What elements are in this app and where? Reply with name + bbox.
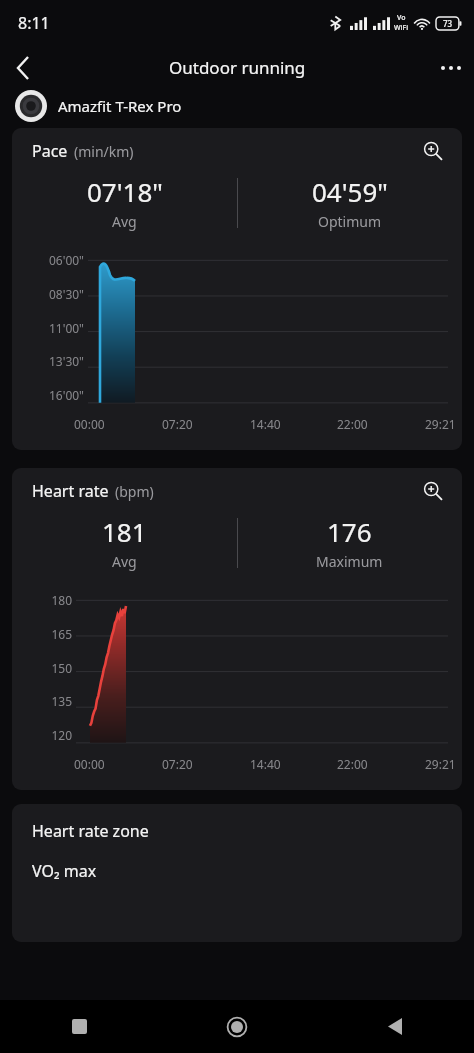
staticText: 07'18" [87,174,163,209]
button[interactable]: Amazfit T-Rex Pro [0,90,474,122]
button[interactable]: Back [0,45,46,90]
button[interactable]: Pace [12,128,462,450]
staticText: VO₂ max [32,860,97,882]
staticText: 150 [51,660,72,676]
staticText: Optimum [318,212,382,231]
staticText: 22:00 [337,756,368,772]
button[interactable]: Home [158,1000,316,1053]
staticText: 8:11 [18,12,50,34]
button[interactable]: Heart rate [12,468,462,790]
staticText: Heart rate [32,480,109,502]
staticText: 13'30" [48,353,84,369]
staticText: 29:21 [425,756,456,772]
staticText: 14:40 [250,756,281,772]
staticText: Maximum [316,552,383,571]
button[interactable]: Zoom in on Heart rate chart [416,474,450,508]
staticText: Avg [112,552,137,571]
staticText: 08'30" [48,286,84,302]
staticText: Outdoor running [169,56,306,79]
staticText: 165 [51,626,72,642]
staticText: Vo [397,13,406,23]
staticText: 00:00 [74,756,105,772]
staticText: 06'00" [48,252,84,268]
staticText: Pace [32,140,68,162]
staticText: 11'00" [48,320,84,336]
staticText: Avg [112,212,137,231]
staticText: Amazfit T-Rex Pro [58,96,182,116]
button[interactable]: Zoom in on Pace chart [416,134,450,168]
staticText: (min/km) [74,142,134,161]
staticText: 73 [443,18,453,29]
button[interactable]: Recent apps [0,1000,158,1053]
staticText: 135 [51,693,72,709]
staticText: 180 [51,592,72,608]
staticText: 07:20 [162,416,193,432]
staticText: 00:00 [74,416,105,432]
staticText: 29:21 [425,416,456,432]
staticText: 04'59" [312,174,388,209]
button[interactable]: Back [316,1000,474,1053]
staticText: 16'00" [48,387,84,403]
staticText: Heart rate zone [32,820,149,842]
button[interactable]: More options [428,45,474,90]
staticText: 181 [102,514,147,549]
staticText: 14:40 [250,416,281,432]
staticText: 120 [51,727,72,743]
button[interactable]: Heart rate zone [12,804,462,942]
staticText: 07:20 [162,756,193,772]
staticText: (bpm) [115,482,154,501]
staticText: WiFi [394,23,409,33]
staticText: 22:00 [337,416,368,432]
staticText: 176 [327,514,372,549]
